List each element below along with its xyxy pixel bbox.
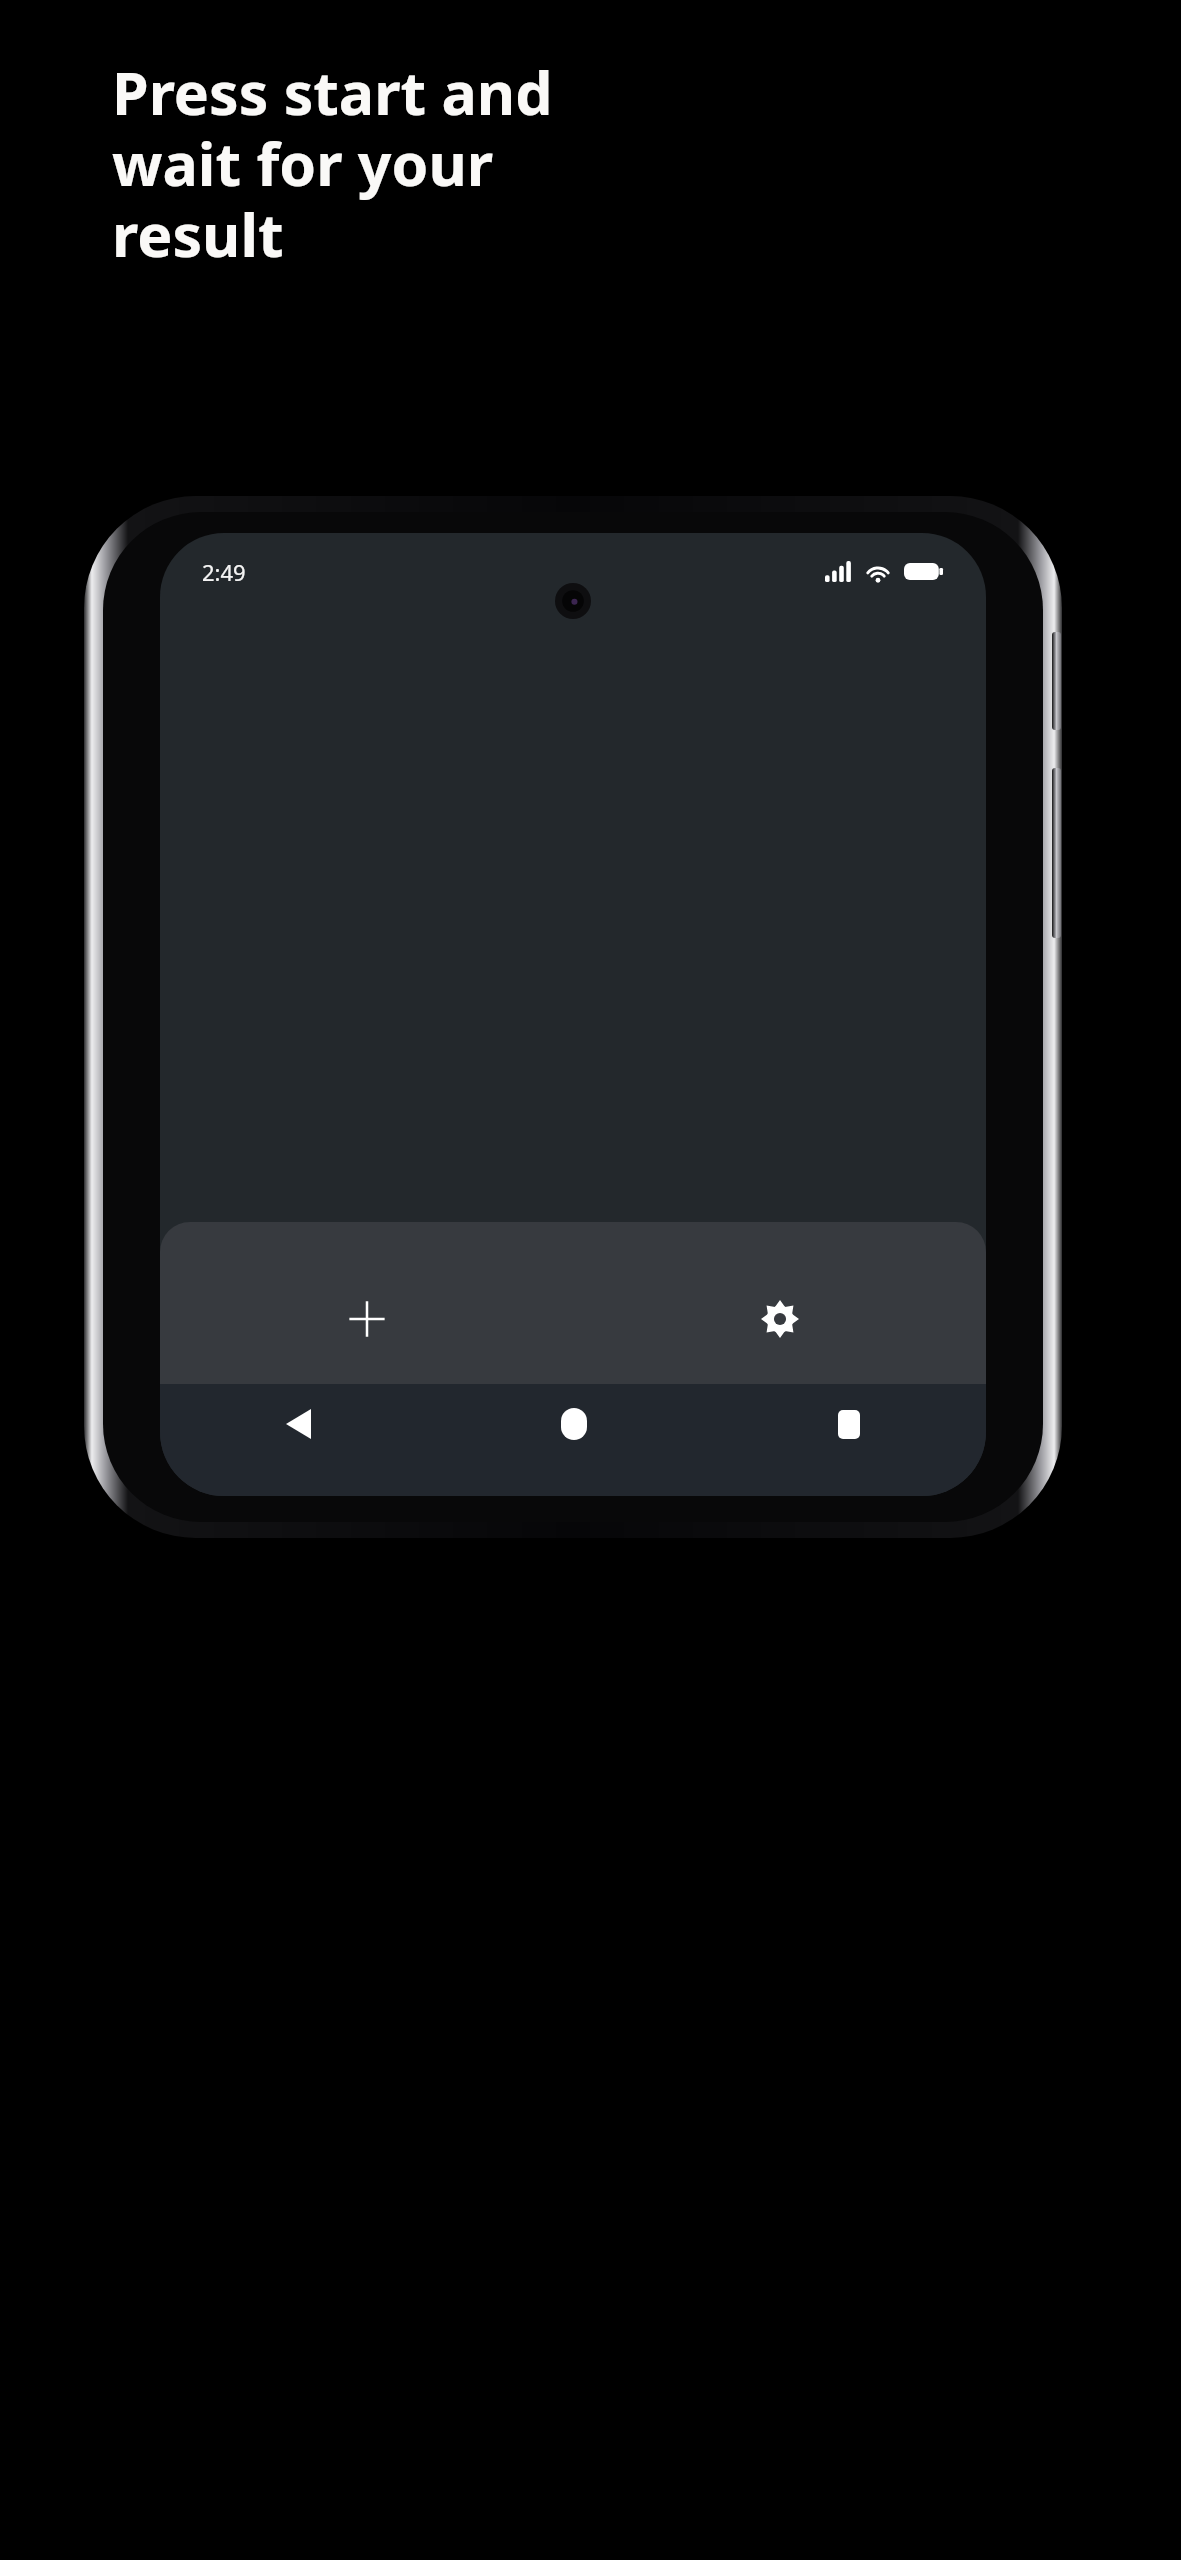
button[interactable]: Settings — [573, 1222, 986, 1384]
button[interactable]: Back — [160, 1384, 436, 1496]
button[interactable]: Add — [160, 1222, 573, 1384]
button[interactable]: Start — [457, 1249, 689, 1481]
staticText: 2:49 — [202, 557, 246, 587]
staticText: Press start and wait for your result — [112, 52, 612, 274]
button[interactable]: Recent apps — [711, 1384, 986, 1496]
staticText: Start — [544, 1393, 603, 1428]
button[interactable]: Home — [436, 1384, 711, 1496]
